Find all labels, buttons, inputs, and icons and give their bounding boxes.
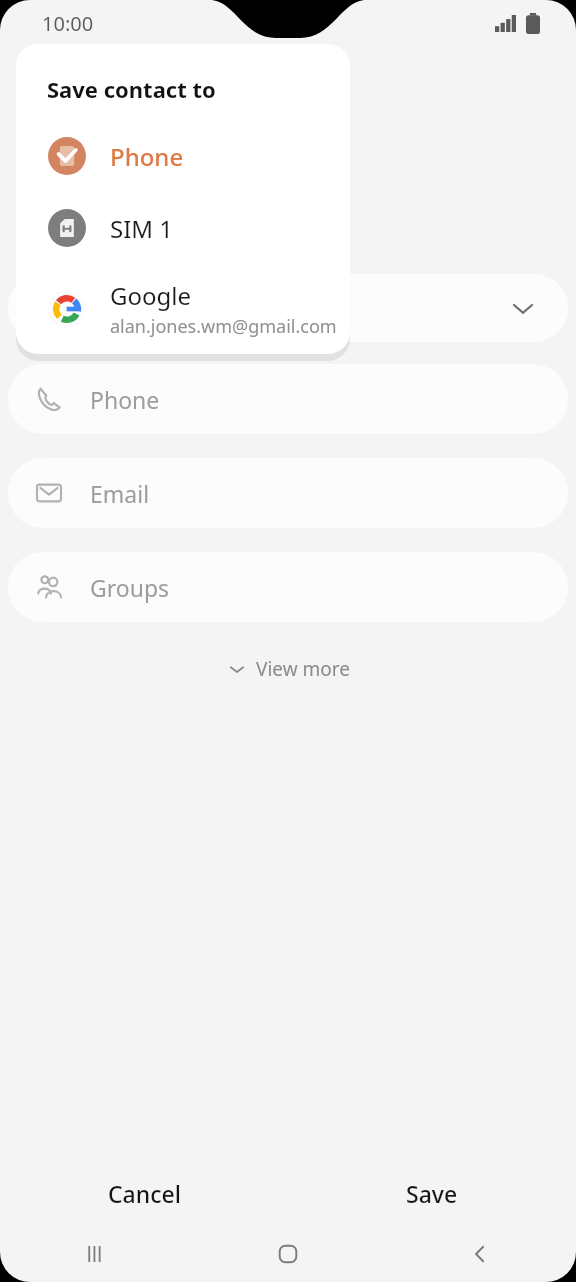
button[interactable]: Cancel [0,1162,288,1224]
staticText: 10:00 [42,10,94,37]
button[interactable]: View more [212,648,364,690]
button[interactable]: Home [192,1226,384,1282]
staticText: View more [256,656,350,682]
staticText: alan.jones.wm@gmail.com [110,314,337,339]
staticText: Email [90,478,150,509]
staticText: Groups [90,572,170,603]
button[interactable]: Recent apps [0,1226,192,1282]
button[interactable]: Phone [16,122,350,190]
staticText: Cancel [108,1178,181,1209]
staticText: Phone [110,140,184,173]
staticText: SIM 1 [110,212,174,245]
button[interactable] [8,274,568,342]
staticText: Google [110,279,191,312]
button[interactable]: Groups [8,552,568,622]
staticText: Phone [90,384,160,415]
button[interactable]: Google [16,268,350,350]
button[interactable]: Email [8,458,568,528]
button[interactable]: Phone [8,364,568,434]
button[interactable]: Save [288,1162,576,1224]
staticText: Save [406,1178,458,1209]
button[interactable]: Back [384,1226,576,1282]
staticText: Save contact to [47,74,216,104]
button[interactable]: SIM 1 [16,194,350,262]
